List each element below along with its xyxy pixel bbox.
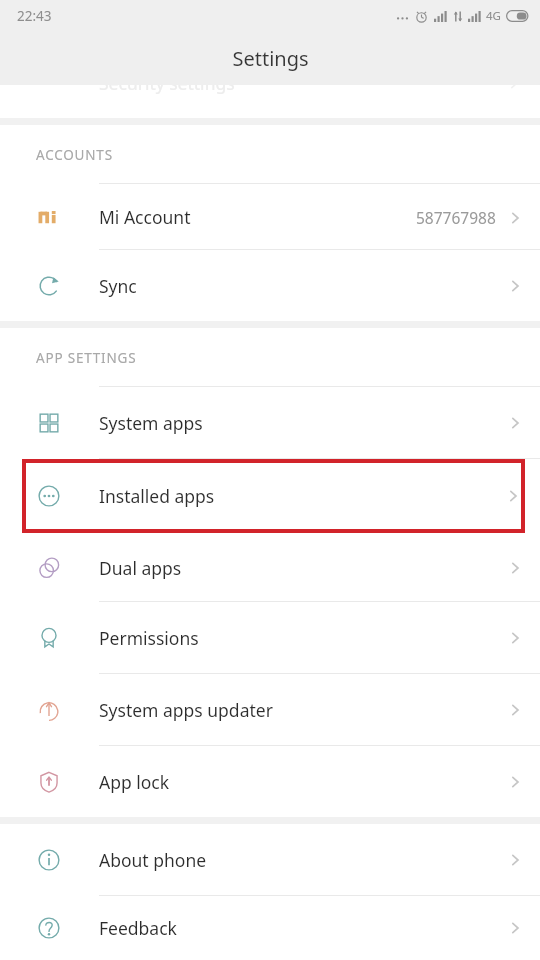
staticText: Permissions xyxy=(99,626,199,650)
staticText: 587767988 xyxy=(416,207,496,228)
button[interactable]: System apps updater xyxy=(0,674,540,746)
staticText: App lock xyxy=(99,770,170,794)
staticText: Security settings xyxy=(99,85,235,95)
button[interactable]: App lock xyxy=(0,746,540,817)
staticText: Mi Account xyxy=(99,205,191,229)
staticText: Sync xyxy=(99,274,137,298)
staticText: About phone xyxy=(99,848,207,872)
staticText: 22:43 xyxy=(17,7,52,25)
button[interactable]: System apps xyxy=(0,387,540,459)
staticText: ACCOUNTS xyxy=(36,146,113,164)
staticText: Dual apps xyxy=(99,556,182,580)
staticText: System apps xyxy=(99,411,203,435)
button[interactable]: Feedback xyxy=(0,896,540,960)
staticText: Settings xyxy=(232,45,309,72)
button[interactable]: Sync xyxy=(0,250,540,321)
button[interactable]: Permissions xyxy=(0,602,540,674)
staticText: Installed apps xyxy=(99,484,215,508)
button[interactable]: About phone xyxy=(0,824,540,896)
button[interactable]: Dual apps xyxy=(0,533,540,602)
staticText: 4G xyxy=(486,8,501,24)
staticText: Feedback xyxy=(99,916,177,940)
button[interactable]: Installed apps xyxy=(22,459,525,533)
button[interactable]: Mi Account xyxy=(0,184,540,250)
staticText: APP SETTINGS xyxy=(36,349,137,367)
staticText: System apps updater xyxy=(99,698,273,722)
